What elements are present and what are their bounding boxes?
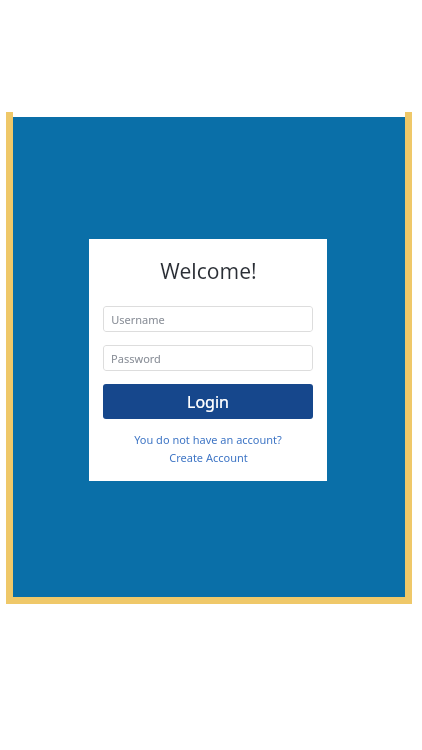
- staticText: You do not have an account?: [134, 432, 282, 447]
- staticText: Username: [111, 312, 165, 327]
- staticText: Login: [187, 391, 229, 413]
- button[interactable]: Login: [103, 384, 313, 419]
- staticText: Create Account: [169, 450, 248, 465]
- button[interactable]: You do not have an account?: [103, 432, 313, 465]
- staticText: Welcome!: [160, 257, 257, 286]
- button[interactable]: Username: [103, 306, 313, 332]
- button[interactable]: Password: [103, 345, 313, 371]
- staticText: Password: [111, 351, 161, 366]
